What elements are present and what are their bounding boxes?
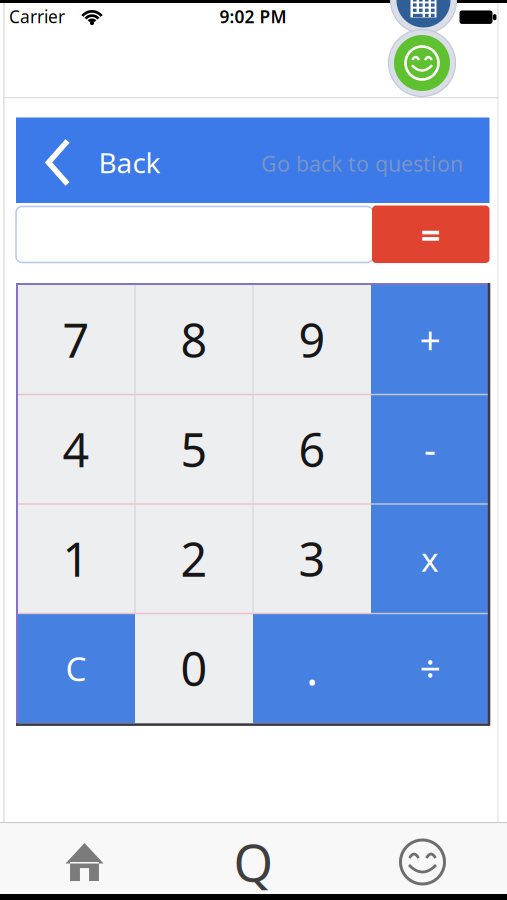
staticText: Carrier (9, 5, 65, 28)
button[interactable] (390, 0, 456, 33)
staticText: 4 (62, 418, 89, 480)
staticText: . (306, 638, 318, 698)
staticText: 1 (62, 528, 89, 590)
staticText: 0 (180, 637, 207, 699)
staticText: 5 (180, 418, 207, 480)
button[interactable]: 3 (253, 504, 371, 613)
button[interactable]: ÷ (371, 613, 489, 723)
button[interactable]: 0 (135, 613, 253, 723)
button[interactable]: 8 (135, 285, 253, 394)
button[interactable] (338, 823, 506, 893)
button[interactable]: 4 (17, 394, 135, 504)
button[interactable] (0, 823, 168, 893)
staticText: Q (233, 828, 273, 896)
staticText: ÷ (419, 643, 440, 693)
staticText: Back (98, 144, 160, 181)
button[interactable]: 6 (253, 394, 371, 504)
button[interactable]: - (371, 394, 489, 504)
staticText: 6 (298, 418, 325, 480)
button[interactable]: 1 (17, 504, 135, 613)
staticText: - (424, 424, 436, 474)
button[interactable] (388, 29, 455, 96)
staticText: 8 (180, 309, 207, 371)
staticText: + (419, 315, 440, 365)
staticText: 2 (180, 528, 207, 590)
button[interactable]: x (371, 504, 489, 613)
staticText: 9:02 PM (219, 5, 286, 28)
staticText: = (421, 211, 441, 257)
staticText: 7 (62, 309, 89, 371)
button[interactable]: 7 (17, 285, 135, 394)
button[interactable]: Back (48, 141, 160, 184)
staticText: 9 (298, 309, 325, 371)
button[interactable]: 9 (253, 285, 371, 394)
staticText: C (65, 646, 86, 690)
button[interactable]: Q (169, 823, 337, 893)
button[interactable]: 2 (135, 504, 253, 613)
staticText: x (421, 537, 439, 581)
button[interactable]: + (371, 285, 489, 394)
button[interactable]: 5 (135, 394, 253, 504)
button[interactable]: = (372, 206, 489, 263)
staticText: Go back to question (261, 149, 463, 178)
button[interactable]: C (17, 613, 135, 723)
staticText: 3 (298, 528, 325, 590)
button[interactable]: . (253, 613, 371, 723)
